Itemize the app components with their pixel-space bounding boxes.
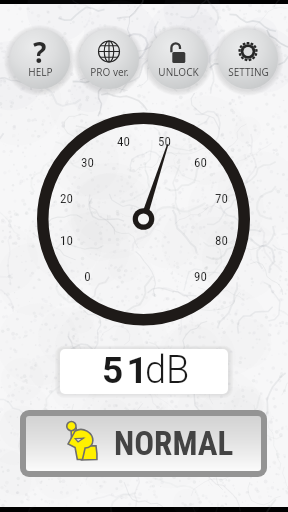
staticText: 80 [215, 233, 228, 248]
button[interactable]: UNLOCK [148, 29, 208, 89]
staticText: 50 [158, 134, 171, 149]
staticText: UNLOCK [158, 65, 199, 79]
staticText: 0 [84, 269, 91, 284]
staticText: 5 1 [102, 349, 145, 392]
staticText: ? [33, 33, 47, 71]
button[interactable]: SETTING [218, 29, 278, 89]
button[interactable]: NORMAL [26, 416, 261, 471]
button[interactable]: 5 1 [60, 349, 228, 394]
staticText: 90 [194, 269, 207, 284]
staticText: PRO ver. [90, 65, 129, 79]
staticText: 70 [215, 191, 228, 206]
staticText: 30 [81, 155, 94, 170]
staticText: 60 [194, 155, 207, 170]
staticText: 10 [60, 233, 73, 248]
staticText: 20 [60, 191, 73, 206]
button[interactable]: PRO ver. [79, 29, 139, 89]
staticText: 40 [117, 134, 130, 149]
staticText: SETTING [228, 65, 269, 79]
button[interactable]: HELP [10, 29, 70, 89]
staticText: dB [145, 349, 190, 393]
staticText: HELP [28, 65, 53, 79]
staticText: NORMAL [114, 424, 234, 463]
